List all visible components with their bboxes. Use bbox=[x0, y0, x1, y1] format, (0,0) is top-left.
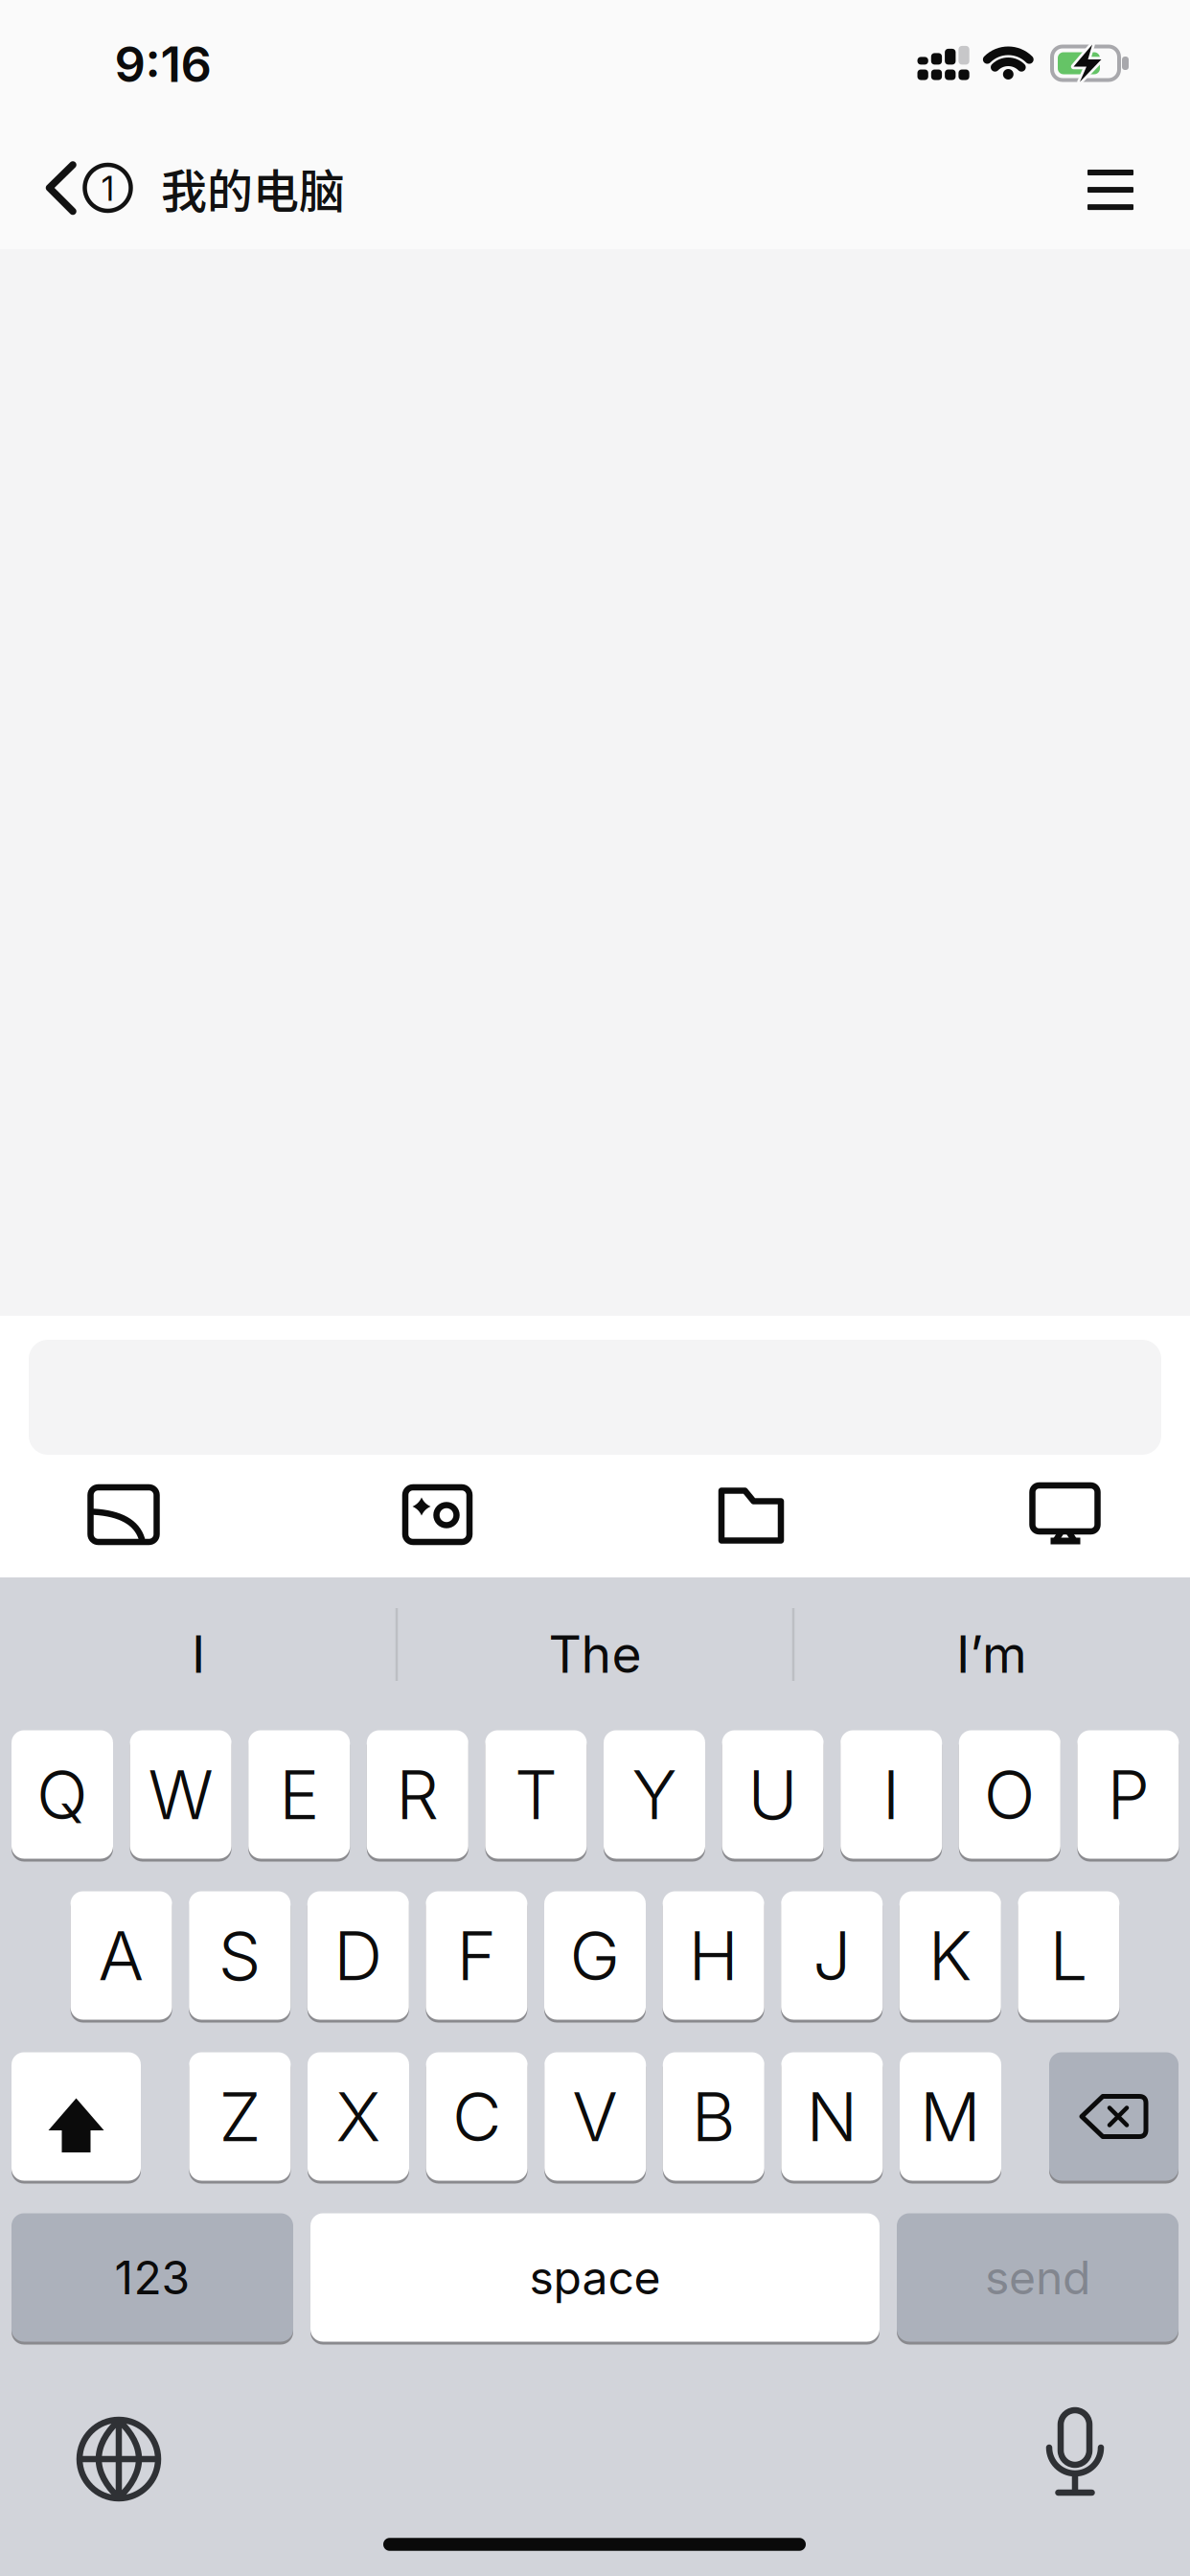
staticText: V bbox=[572, 2075, 618, 2157]
button[interactable] bbox=[80, 1472, 167, 1558]
button[interactable]: U bbox=[722, 1729, 824, 1860]
button[interactable]: Q bbox=[11, 1729, 113, 1860]
button[interactable]: space bbox=[310, 2212, 880, 2343]
staticText: send bbox=[985, 2250, 1090, 2305]
button[interactable]: The bbox=[403, 1582, 787, 1726]
button[interactable]: K bbox=[899, 1890, 1001, 2021]
staticText: M bbox=[920, 2075, 981, 2157]
staticText: Y bbox=[632, 1753, 677, 1835]
button[interactable] bbox=[11, 2051, 141, 2182]
staticText: W bbox=[148, 1753, 213, 1835]
button[interactable]: H bbox=[663, 1890, 764, 2021]
button[interactable]: N bbox=[781, 2051, 883, 2182]
button[interactable]: J bbox=[781, 1890, 883, 2021]
staticText: J bbox=[813, 1914, 851, 1996]
staticText: I bbox=[882, 1753, 900, 1835]
staticText: F bbox=[456, 1914, 497, 1996]
staticText: A bbox=[98, 1914, 144, 1996]
button[interactable]: I bbox=[840, 1729, 942, 1860]
button[interactable] bbox=[708, 1472, 794, 1558]
button[interactable]: X bbox=[308, 2051, 409, 2182]
button[interactable]: I bbox=[7, 1582, 390, 1726]
staticText: O bbox=[984, 1753, 1036, 1835]
button[interactable]: A bbox=[71, 1890, 172, 2021]
staticText: T bbox=[514, 1753, 558, 1835]
staticText: Q bbox=[36, 1753, 88, 1835]
button[interactable] bbox=[1072, 151, 1149, 228]
button[interactable]: B bbox=[663, 2051, 764, 2182]
button[interactable]: G bbox=[544, 1890, 646, 2021]
button[interactable] bbox=[1022, 2403, 1128, 2508]
button[interactable] bbox=[394, 1472, 481, 1558]
button[interactable]: C bbox=[426, 2051, 528, 2182]
staticText: 9:16 bbox=[114, 35, 211, 94]
button[interactable]: M bbox=[900, 2051, 1001, 2182]
staticText: X bbox=[336, 2075, 381, 2157]
button[interactable]: T bbox=[485, 1729, 587, 1860]
button[interactable] bbox=[1022, 1472, 1108, 1558]
staticText: U bbox=[748, 1753, 798, 1835]
button[interactable]: send bbox=[897, 2212, 1179, 2343]
button[interactable]: F bbox=[426, 1890, 527, 2021]
button[interactable]: O bbox=[959, 1729, 1060, 1860]
button[interactable]: D bbox=[307, 1890, 409, 2021]
button[interactable]: I’m bbox=[800, 1582, 1183, 1726]
button[interactable]: Y bbox=[604, 1729, 705, 1860]
button[interactable]: R bbox=[367, 1729, 468, 1860]
button[interactable] bbox=[1049, 2051, 1179, 2182]
staticText: C bbox=[452, 2075, 501, 2157]
button[interactable]: 1 bbox=[0, 121, 163, 255]
staticText: 1 bbox=[102, 169, 114, 209]
staticText: The bbox=[549, 1623, 641, 1685]
staticText: E bbox=[279, 1753, 319, 1835]
button[interactable]: L bbox=[1018, 1890, 1119, 2021]
button[interactable]: W bbox=[130, 1729, 231, 1860]
button[interactable]: Z bbox=[189, 2051, 291, 2182]
staticText: R bbox=[396, 1753, 439, 1835]
staticText: B bbox=[692, 2075, 736, 2157]
staticText: 123 bbox=[114, 2250, 190, 2305]
staticText: N bbox=[806, 2075, 858, 2157]
button[interactable] bbox=[66, 2406, 172, 2512]
staticText: S bbox=[218, 1914, 261, 1996]
staticText: Z bbox=[219, 2075, 261, 2157]
staticText: K bbox=[928, 1914, 972, 1996]
staticText: L bbox=[1050, 1914, 1088, 1996]
staticText: H bbox=[689, 1914, 738, 1996]
staticText: P bbox=[1107, 1753, 1149, 1835]
button[interactable]: 123 bbox=[11, 2212, 293, 2343]
staticText: G bbox=[570, 1914, 620, 1996]
button[interactable]: V bbox=[544, 2051, 646, 2182]
staticText: I bbox=[192, 1623, 205, 1685]
button[interactable]: P bbox=[1077, 1729, 1179, 1860]
button[interactable]: S bbox=[189, 1890, 291, 2021]
staticText: D bbox=[334, 1914, 383, 1996]
staticText: 我的电脑 bbox=[161, 154, 345, 221]
staticText: space bbox=[529, 2250, 661, 2305]
button[interactable]: E bbox=[248, 1729, 350, 1860]
staticText: I’m bbox=[956, 1623, 1027, 1685]
